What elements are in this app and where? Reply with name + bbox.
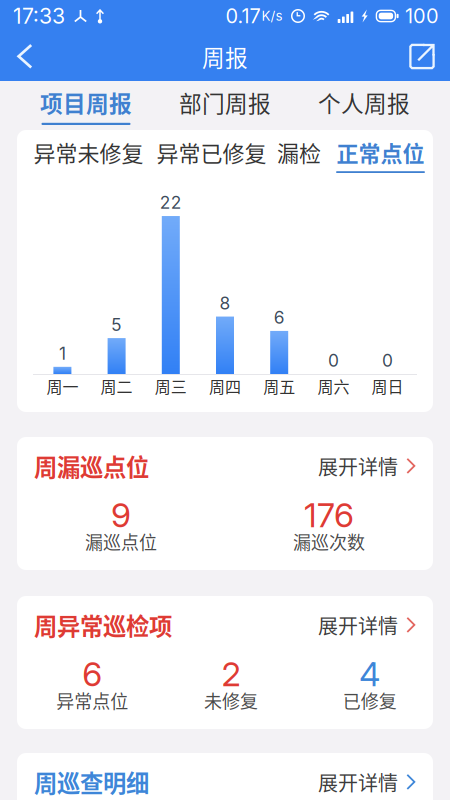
staticText: 周巡查明细 <box>34 765 149 799</box>
staticText: 周二 <box>101 374 133 398</box>
staticText: 周四 <box>209 374 241 398</box>
staticText: 正常点位 <box>336 136 424 168</box>
button[interactable]: 展开详情 <box>318 451 416 480</box>
staticText: 5 <box>111 314 122 335</box>
staticText: 未修复 <box>204 687 258 713</box>
button[interactable]: 项目周报 <box>16 81 155 130</box>
button[interactable]: Back <box>0 32 45 80</box>
button[interactable]: 正常点位 <box>336 130 425 176</box>
button[interactable]: Share <box>397 32 450 80</box>
staticText: 异常点位 <box>56 687 128 713</box>
staticText: 9 <box>111 495 131 535</box>
staticText: 展开详情 <box>318 767 398 796</box>
button[interactable]: 异常已修复 <box>156 130 267 176</box>
staticText: 周日 <box>372 374 404 398</box>
staticText: 2 <box>221 654 240 694</box>
staticText: 个人周报 <box>318 86 410 119</box>
staticText: 周三 <box>155 374 187 398</box>
button[interactable]: 漏检 <box>277 130 321 176</box>
staticText: 周五 <box>263 374 295 398</box>
staticText: K/s <box>261 8 282 24</box>
staticText: 展开详情 <box>318 610 398 639</box>
staticText: 22 <box>160 192 182 213</box>
staticText: 1 <box>59 343 66 364</box>
staticText: 176 <box>304 495 354 535</box>
button[interactable]: 展开详情 <box>318 767 416 796</box>
staticText: 0.17 <box>225 4 260 28</box>
staticText: 0 <box>328 350 339 371</box>
staticText: 周漏巡点位 <box>34 449 149 483</box>
button[interactable]: 部门周报 <box>155 81 294 130</box>
staticText: 17:33 <box>13 3 65 29</box>
staticText: 8 <box>219 293 230 314</box>
staticText: 漏检 <box>277 136 321 168</box>
staticText: 周一 <box>46 374 78 398</box>
staticText: 展开详情 <box>318 451 398 480</box>
button[interactable]: 个人周报 <box>294 81 433 130</box>
staticText: 6 <box>274 307 285 328</box>
staticText: 漏巡次数 <box>293 528 365 554</box>
staticText: 6 <box>82 654 102 694</box>
staticText: 异常未修复 <box>33 136 143 168</box>
button[interactable]: 展开详情 <box>318 610 416 639</box>
staticText: 异常已修复 <box>156 136 266 168</box>
staticText: 周异常巡检项 <box>34 608 172 642</box>
staticText: 项目周报 <box>40 86 132 119</box>
staticText: 100 <box>405 4 439 28</box>
staticText: 0 <box>382 350 393 371</box>
staticText: 已修复 <box>343 687 397 713</box>
staticText: 周六 <box>317 374 349 398</box>
staticText: 漏巡点位 <box>85 528 157 554</box>
staticText: 部门周报 <box>179 86 271 119</box>
staticText: 4 <box>359 654 380 694</box>
staticText: 周报 <box>202 40 248 73</box>
button[interactable]: 异常未修复 <box>33 130 144 176</box>
